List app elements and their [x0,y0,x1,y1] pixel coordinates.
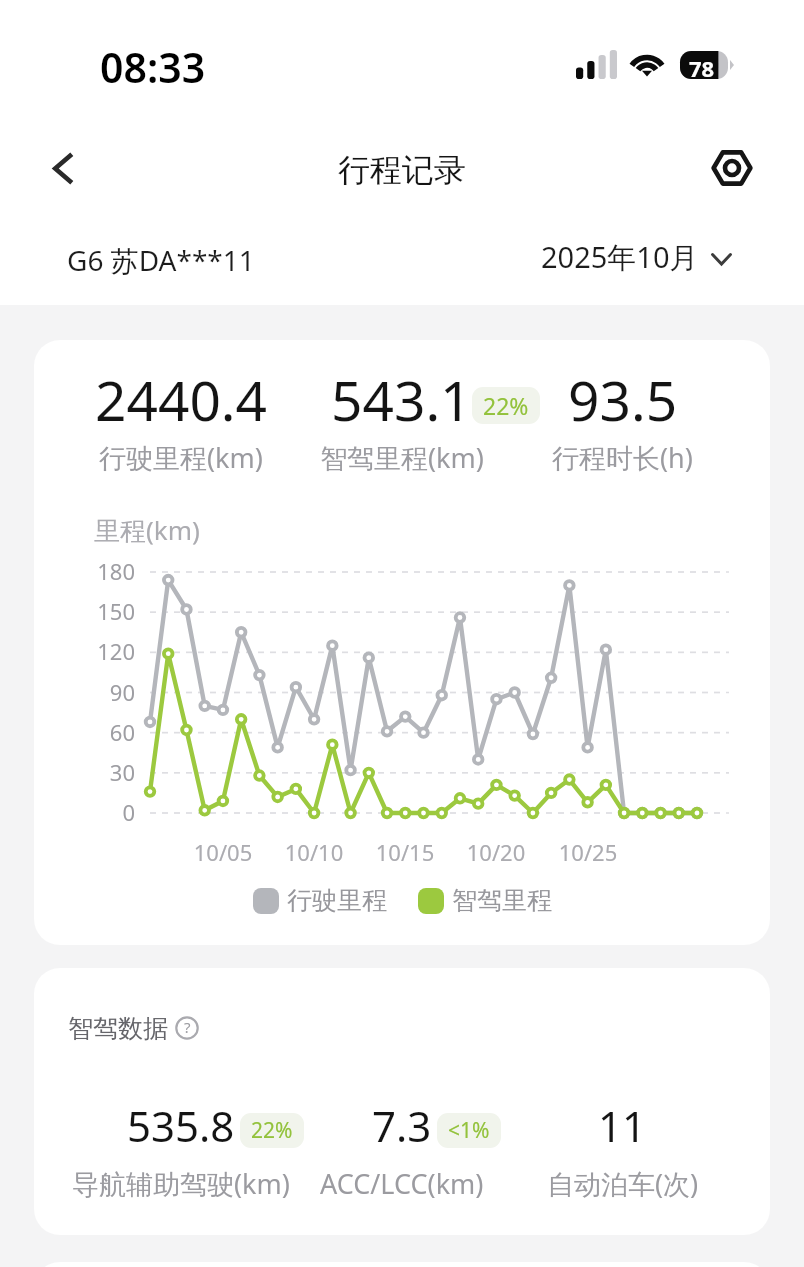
staticText: 10/25 [543,837,633,867]
staticText: 行程记录 [338,150,466,190]
staticText: 78 [689,53,715,81]
staticText: 行程时长(h) [552,439,693,476]
staticText: 10/05 [178,837,268,867]
staticText: 10/10 [269,837,359,867]
button[interactable]: 行驶里程 [253,885,387,916]
staticText: 自动泊车(次) [547,1165,699,1202]
button[interactable]: Back [30,140,96,196]
staticText: ACC/LCC(km) [320,1165,484,1202]
staticText: 0 [69,797,135,827]
staticText: 08:33 [100,39,206,95]
staticText: 93.5 [568,362,678,437]
staticText: G6 苏DA***11 [67,241,255,279]
staticText: 22% [251,1116,293,1145]
staticText: 10/15 [360,837,450,867]
staticText: 10/20 [451,837,541,867]
staticText: 150 [69,596,135,626]
button[interactable]: Settings [704,140,760,196]
staticText: 行驶里程 [287,885,387,916]
staticText: 60 [69,717,135,747]
button[interactable]: 智驾里程 [418,885,552,916]
staticText: 2025年10月 [541,237,699,277]
staticText: 120 [69,636,135,666]
staticText: 行驶里程(km) [99,439,263,476]
button[interactable]: 2025年10月 [541,236,732,278]
staticText: 30 [69,757,135,787]
staticText: 535.8 [127,1097,235,1154]
staticText: 180 [69,556,135,586]
staticText: 导航辅助驾驶(km) [72,1165,290,1202]
staticText: 智驾里程 [452,885,552,916]
staticText: ? [184,1017,191,1037]
staticText: 22% [483,390,529,421]
staticText: 里程(km) [94,512,200,548]
staticText: 智驾里程(km) [320,439,484,476]
staticText: 11 [598,1097,647,1154]
staticText: 543.1 [331,362,472,437]
staticText: 90 [69,677,135,707]
staticText: 2440.4 [95,362,268,437]
button[interactable]: Help [175,1016,199,1040]
staticText: 7.3 [372,1097,432,1154]
staticText: 智驾数据 [68,1013,168,1044]
staticText: <1% [448,1116,490,1145]
